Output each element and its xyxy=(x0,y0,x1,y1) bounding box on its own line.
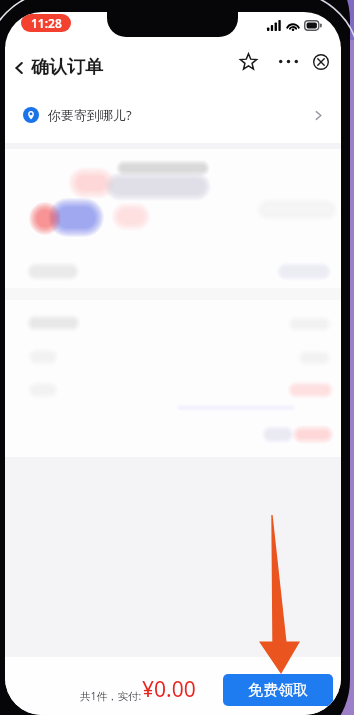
staticText: 11:28 xyxy=(31,15,62,31)
staticText: 你要寄到哪儿? xyxy=(48,106,132,124)
button[interactable]: 免费领取 xyxy=(223,674,333,706)
button[interactable]: 你要寄到哪儿? xyxy=(5,87,341,143)
button[interactable]: Favorite xyxy=(235,48,262,75)
staticText: 免费领取 xyxy=(248,681,308,700)
staticText: 确认订单 xyxy=(31,56,103,79)
staticText: ¥0.00 xyxy=(142,675,196,704)
staticText: 共1件，实付: xyxy=(80,689,142,703)
button[interactable]: Close xyxy=(307,48,334,75)
button[interactable]: 确认订单 xyxy=(9,56,103,79)
button[interactable]: More options xyxy=(275,48,302,75)
